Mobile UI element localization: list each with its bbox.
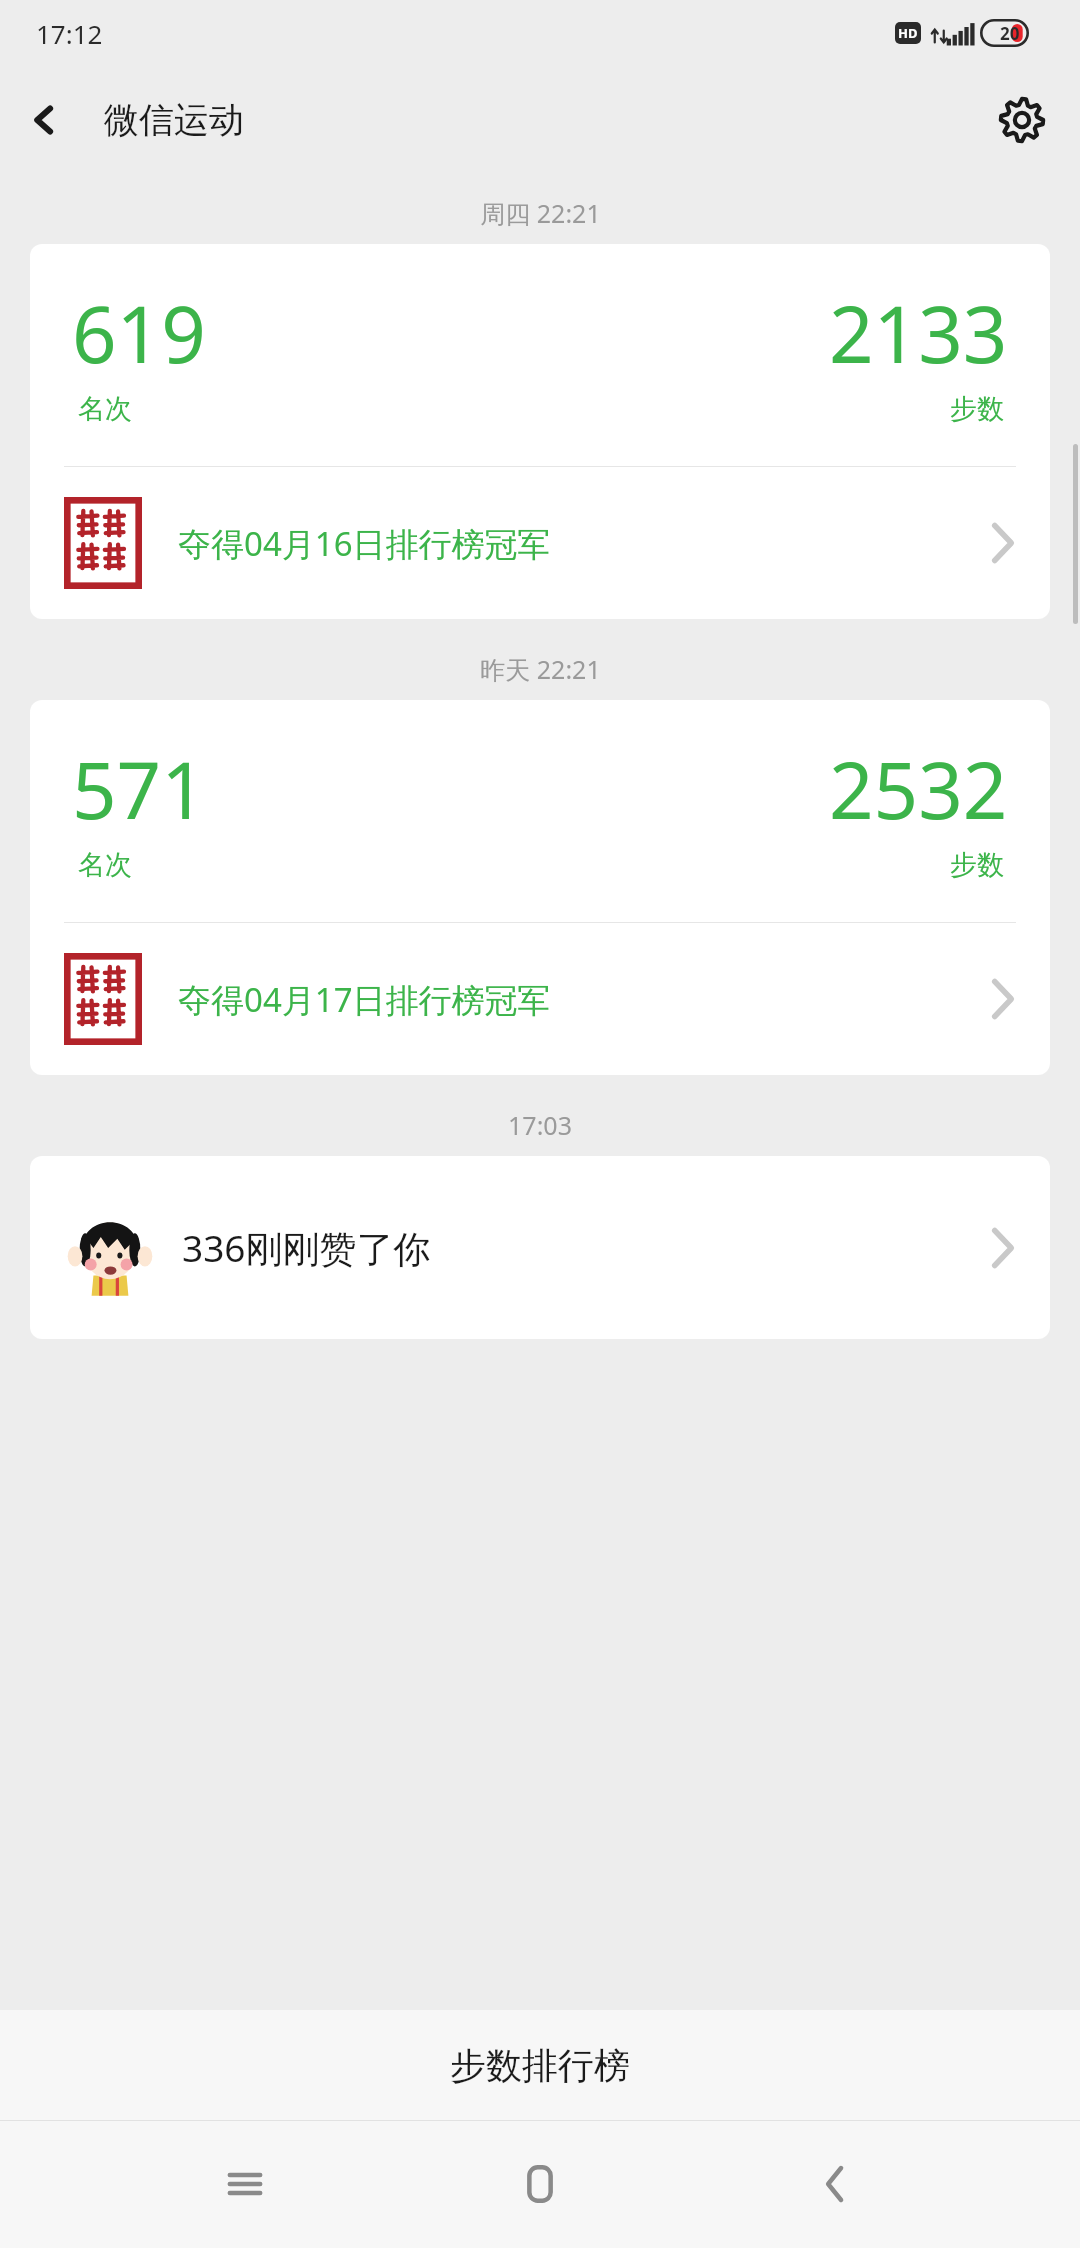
button[interactable]: Recents (195, 2134, 295, 2234)
button[interactable]: 336刚刚赞了你 (30, 1156, 1050, 1339)
button[interactable]: 步数排行榜 (0, 2010, 1080, 2120)
staticText: 步数 (950, 848, 1004, 882)
staticText: 夺得04月16日排行榜冠军 (178, 521, 551, 566)
staticText: 昨天 22:21 (480, 652, 601, 686)
staticText: 17:12 (36, 16, 103, 51)
button[interactable]: 619 (30, 244, 1050, 619)
button[interactable]: Settings (986, 84, 1058, 156)
staticText: 2133 (829, 280, 1008, 386)
staticText: 名次 (78, 392, 132, 426)
staticText: HD (898, 24, 918, 42)
staticText: 步数 (950, 392, 1004, 426)
staticText: 619 (72, 280, 206, 386)
staticText: 2532 (829, 736, 1008, 842)
button[interactable]: 571 (30, 700, 1050, 1075)
button[interactable]: Back (785, 2134, 885, 2234)
staticText: 336刚刚赞了你 (182, 1222, 431, 1273)
staticText: 步数排行榜 (450, 2043, 630, 2088)
staticText: 周四 22:21 (480, 196, 601, 230)
staticText: 571 (72, 736, 206, 842)
staticText: 17:03 (508, 1108, 572, 1142)
staticText: 微信运动 (104, 98, 244, 142)
staticText: 20 (1000, 22, 1020, 45)
staticText: 夺得04月17日排行榜冠军 (178, 977, 551, 1022)
staticText: 名次 (78, 848, 132, 882)
button[interactable]: Home (490, 2134, 590, 2234)
button[interactable]: Back (8, 84, 80, 156)
